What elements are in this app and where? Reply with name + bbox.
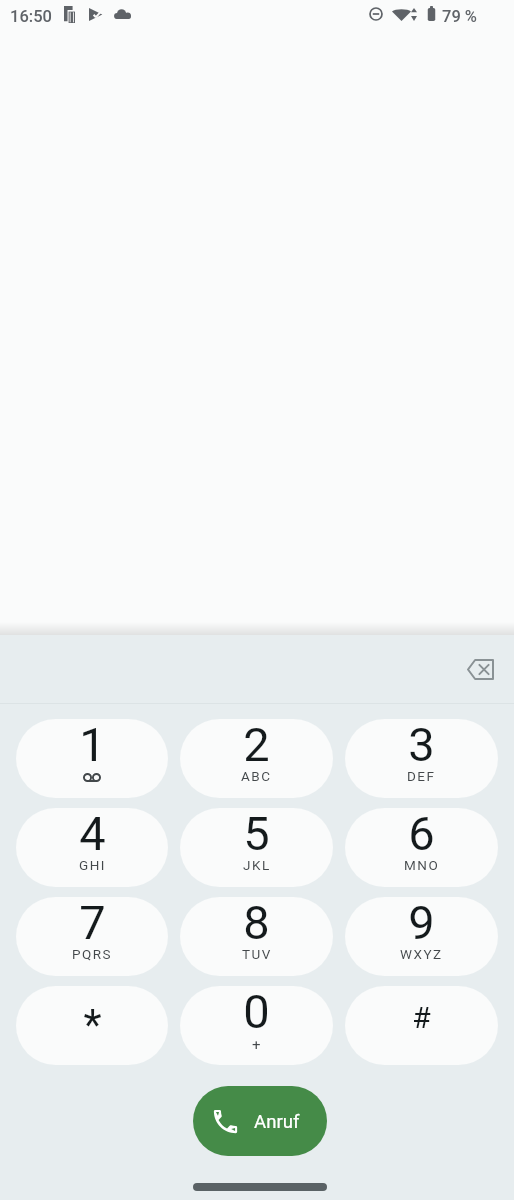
button[interactable]: 0 xyxy=(180,986,333,1065)
button[interactable]: 5 xyxy=(180,808,333,887)
staticText: 1 xyxy=(79,719,106,772)
button[interactable]: Backspace xyxy=(456,645,504,693)
staticText: * xyxy=(83,1000,102,1049)
button[interactable]: # xyxy=(345,986,498,1065)
staticText: ABC xyxy=(241,768,272,784)
button[interactable]: 1 xyxy=(16,719,168,798)
staticText: 9 xyxy=(408,897,435,950)
staticText: + xyxy=(252,1036,261,1054)
staticText: DEF xyxy=(407,768,436,784)
button[interactable]: 7 xyxy=(16,897,168,976)
staticText: 79 % xyxy=(442,7,477,26)
staticText: MNO xyxy=(404,857,440,873)
staticText: 3 xyxy=(408,719,435,772)
staticText: PQRS xyxy=(72,946,113,962)
staticText: # xyxy=(412,1000,431,1035)
staticText: 16:50 xyxy=(10,7,52,26)
button[interactable]: * xyxy=(16,986,168,1065)
staticText: 2 xyxy=(243,719,270,772)
staticText: WXYZ xyxy=(400,946,443,962)
button[interactable]: Anruf xyxy=(193,1086,327,1156)
staticText: 5 xyxy=(243,808,270,861)
staticText: TUV xyxy=(242,946,272,962)
button[interactable]: 4 xyxy=(16,808,168,887)
staticText: GHI xyxy=(79,857,106,873)
staticText: 0 xyxy=(243,986,270,1039)
button[interactable]: 2 xyxy=(180,719,333,798)
button[interactable]: 6 xyxy=(345,808,498,887)
button[interactable]: 8 xyxy=(180,897,333,976)
staticText: 8 xyxy=(243,897,270,950)
button[interactable]: 9 xyxy=(345,897,498,976)
staticText: JKL xyxy=(243,857,271,873)
staticText: 4 xyxy=(79,808,106,861)
staticText: 6 xyxy=(408,808,435,861)
staticText: 7 xyxy=(79,897,106,950)
button[interactable]: 3 xyxy=(345,719,498,798)
staticText: Anruf xyxy=(254,1111,300,1133)
